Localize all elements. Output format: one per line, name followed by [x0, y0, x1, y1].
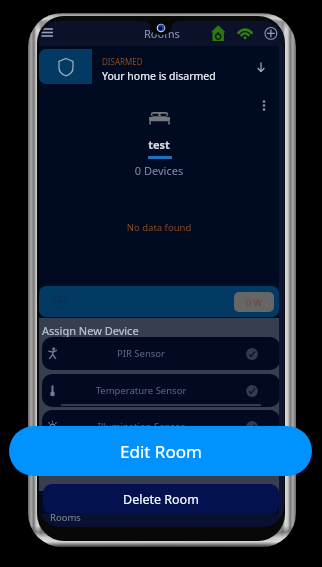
- staticText: Rooms: [144, 26, 180, 41]
- button[interactable]: Delete Room: [43, 484, 279, 514]
- button[interactable]: Temperature Sensor: [42, 374, 280, 407]
- button[interactable]: Edit Room: [9, 426, 312, 476]
- staticText: Assign New Device: [42, 323, 139, 338]
- button[interactable]: Room options: [256, 95, 272, 111]
- button[interactable]: 0 W: [39, 286, 279, 317]
- staticText: Your home is disarmed: [102, 69, 216, 83]
- button[interactable]: Wi-Fi status: [234, 21, 256, 46]
- staticText: PIR Sensor: [61, 347, 221, 360]
- button[interactable]: PIR Sensor: [42, 337, 280, 370]
- staticText: Delete Room: [123, 491, 199, 508]
- staticText: Temperature Sensor: [61, 384, 221, 397]
- staticText: Illumination Sensor: [61, 420, 221, 433]
- staticText: Rooms: [50, 511, 81, 524]
- button[interactable]: 0 W: [234, 292, 274, 312]
- button[interactable]: Illumination Sensor: [42, 410, 280, 443]
- staticText: Edit Room: [120, 440, 202, 463]
- staticText: No data found: [39, 221, 279, 234]
- button[interactable]: Add device: [259, 21, 283, 46]
- button[interactable]: DISARMED: [39, 49, 279, 84]
- button[interactable]: Home: [207, 21, 229, 46]
- staticText: DISARMED: [102, 56, 143, 67]
- staticText: 0 Devices: [39, 163, 279, 178]
- staticText: 0 W: [246, 296, 262, 308]
- staticText: test: [39, 137, 279, 152]
- button[interactable]: Rooms: [50, 510, 84, 524]
- button[interactable]: Open navigation menu: [39, 21, 61, 46]
